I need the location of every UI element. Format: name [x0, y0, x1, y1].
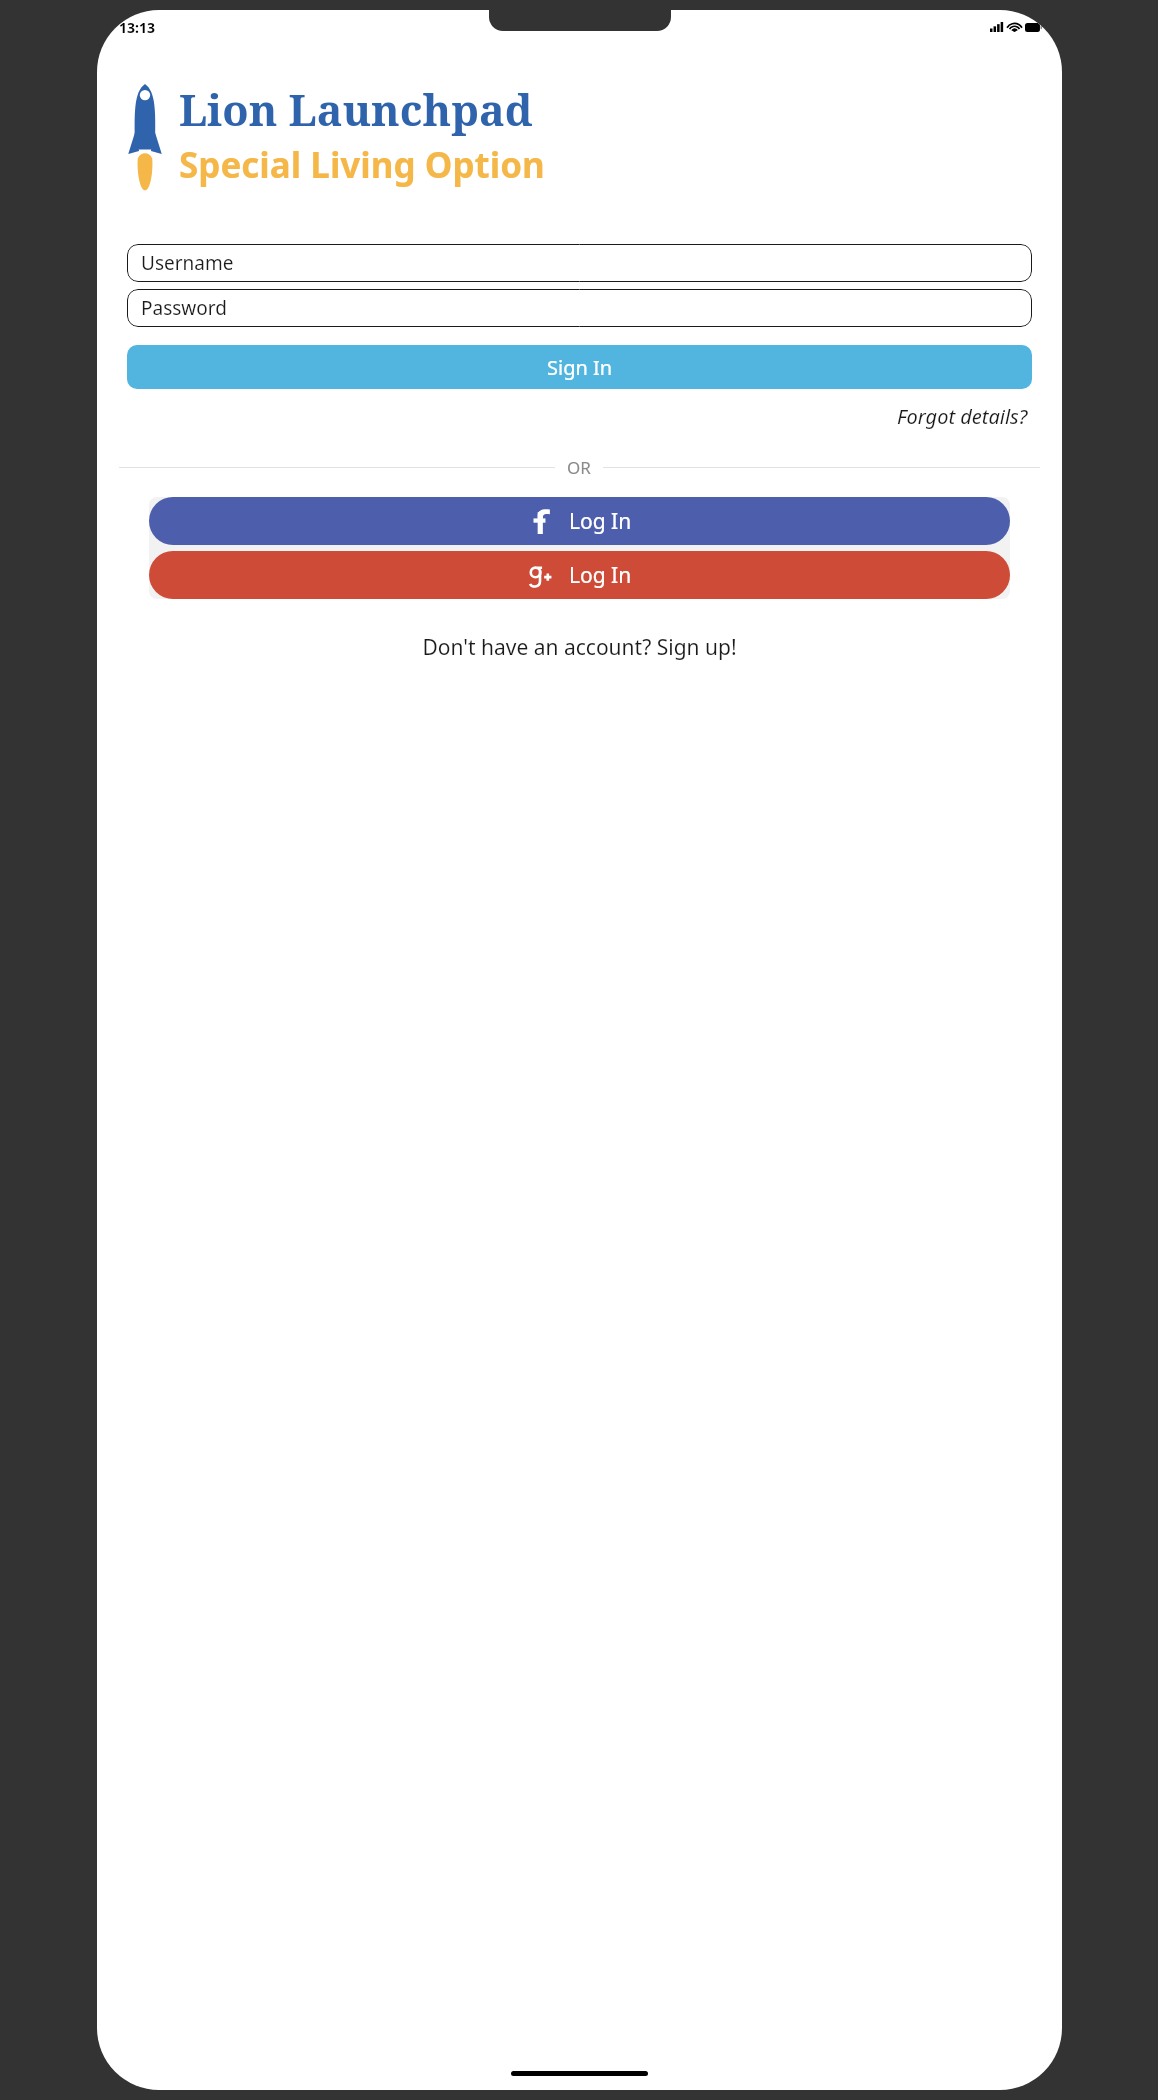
staticText: Log In [569, 507, 632, 536]
staticText: Log In [569, 561, 632, 590]
staticText: Special Living Option [179, 141, 545, 189]
button[interactable]: Password [127, 289, 1032, 327]
staticText: Lion Launchpad [179, 80, 533, 139]
staticText: OR [567, 456, 591, 479]
button[interactable]: Username [127, 244, 1032, 282]
staticText: Forgot details? [897, 403, 1028, 430]
staticText: 13:13 [119, 18, 155, 37]
staticText: Username [141, 250, 234, 276]
staticText: Don't have an account? Sign up! [422, 633, 737, 662]
button[interactable]: Don't have an account? Sign up! [412, 629, 747, 666]
button[interactable]: Log In [149, 551, 1010, 599]
staticText: Password [141, 295, 227, 321]
staticText: Sign In [547, 354, 613, 381]
button[interactable]: Forgot details? [893, 399, 1032, 434]
button[interactable]: Sign In [127, 345, 1032, 389]
button[interactable]: Log In [149, 497, 1010, 545]
